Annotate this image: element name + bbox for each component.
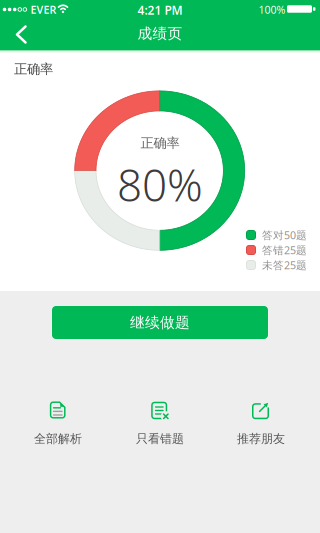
staticText: 100% xyxy=(258,2,285,17)
staticText: 正确率 xyxy=(14,61,53,77)
staticText: 正确率 xyxy=(140,135,179,151)
button[interactable]: 推荐朋友 xyxy=(221,401,301,446)
button[interactable]: 继续做题 xyxy=(52,306,268,339)
staticText: 答对50题 xyxy=(262,228,307,242)
staticText: 继续做题 xyxy=(130,313,190,331)
button[interactable]: 全部解析 xyxy=(18,401,98,446)
staticText: 答错25题 xyxy=(262,243,307,257)
staticText: 4:21 PM xyxy=(137,2,182,18)
button[interactable]: 只看错题 xyxy=(120,401,200,446)
staticText: EVER xyxy=(30,2,56,17)
button[interactable]: Back xyxy=(0,20,44,50)
staticText: 成绩页 xyxy=(137,24,182,42)
staticText: 全部解析 xyxy=(34,431,82,446)
staticText: 80% xyxy=(117,155,203,214)
staticText: 推荐朋友 xyxy=(237,431,285,446)
staticText: 只看错题 xyxy=(136,431,184,446)
staticText: 未答25题 xyxy=(262,258,307,272)
